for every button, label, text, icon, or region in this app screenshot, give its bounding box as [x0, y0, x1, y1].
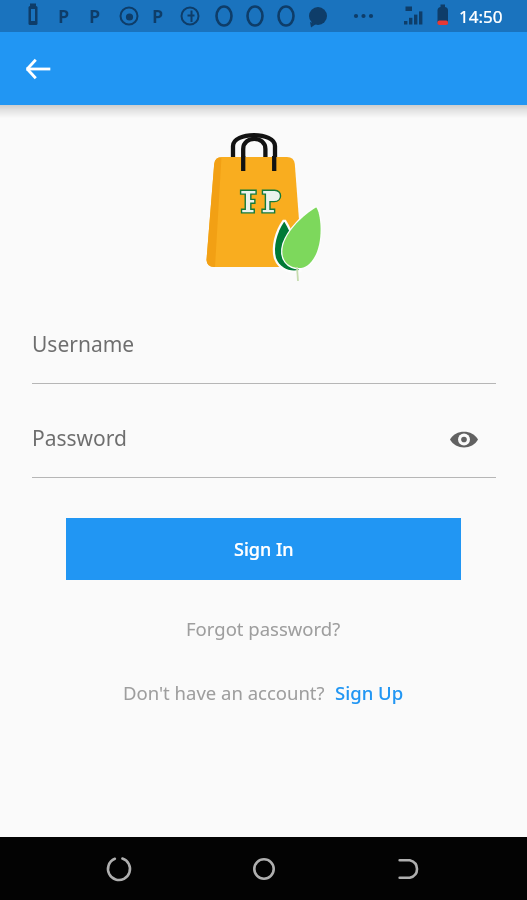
button[interactable]: Recents	[383, 844, 433, 894]
button[interactable]: Back	[16, 47, 60, 91]
staticText: Username	[32, 330, 135, 359]
staticText: Password	[32, 424, 127, 453]
staticText: Sign In	[234, 537, 294, 562]
button[interactable]: Sign In	[66, 518, 461, 580]
button[interactable]: Home	[239, 844, 289, 894]
staticText: P	[58, 4, 70, 29]
button[interactable]: Sign Up	[335, 680, 404, 705]
staticText: P	[89, 4, 101, 29]
staticText: Sign Up	[335, 680, 404, 705]
staticText: 14:50	[459, 5, 503, 28]
button[interactable]: Show password	[446, 421, 482, 457]
button[interactable]: Forgot password?	[176, 610, 351, 647]
staticText: P	[152, 4, 164, 29]
button[interactable]: Password	[32, 414, 496, 478]
staticText: Don't have an account?	[123, 680, 325, 705]
staticText: Forgot password?	[186, 616, 341, 641]
button[interactable]: Back	[94, 844, 144, 894]
button[interactable]: Username	[32, 320, 496, 384]
